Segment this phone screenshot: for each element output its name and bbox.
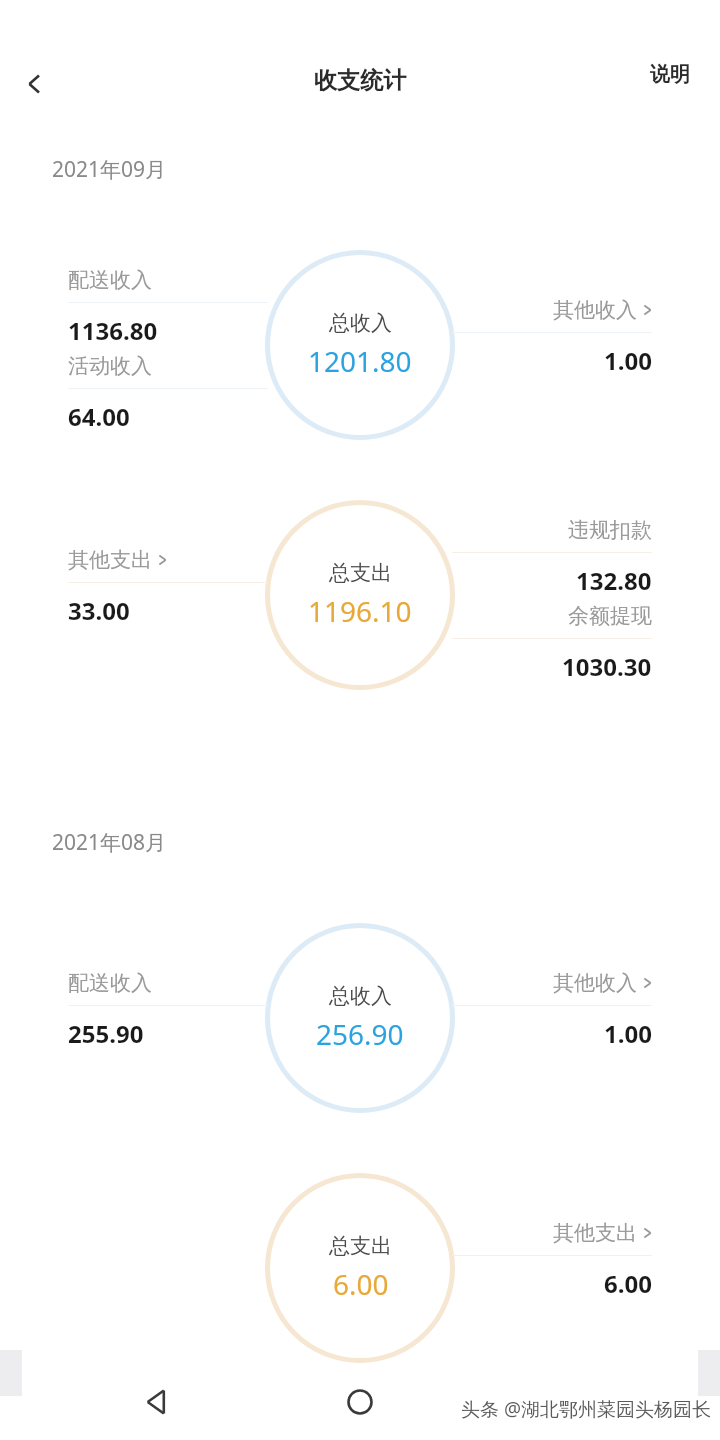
- button[interactable]: 说明: [650, 62, 690, 87]
- staticText: 1201.80: [308, 342, 412, 380]
- staticText: 256.90: [316, 1015, 404, 1053]
- button[interactable]: Home: [332, 1374, 388, 1430]
- staticText: 活动收入: [68, 353, 152, 379]
- staticText: 6.00: [604, 1267, 652, 1300]
- button[interactable]: 违规扣款: [452, 517, 652, 597]
- button[interactable]: 其他支出: [452, 1220, 652, 1300]
- button[interactable]: 总支出: [265, 1173, 455, 1363]
- staticText: 1196.10: [308, 592, 412, 630]
- button[interactable]: 配送收入: [68, 970, 268, 1050]
- staticText: 头条 @湖北鄂州菜园头杨园长: [461, 1396, 712, 1422]
- button[interactable]: Back: [128, 1374, 184, 1430]
- staticText: 其他支出: [68, 547, 152, 573]
- staticText: 其他收入: [553, 970, 637, 996]
- button[interactable]: 余额提现: [452, 603, 652, 683]
- staticText: 33.00: [68, 594, 130, 627]
- staticText: 总支出: [329, 560, 392, 586]
- staticText: 2021年09月: [52, 155, 167, 184]
- staticText: 6.00: [333, 1265, 389, 1303]
- staticText: 64.00: [68, 400, 130, 433]
- button[interactable]: 配送收入: [68, 267, 268, 347]
- staticText: 1.00: [604, 1017, 652, 1050]
- staticText: 配送收入: [68, 267, 152, 293]
- staticText: 其他收入: [553, 297, 637, 323]
- staticText: 1.00: [604, 344, 652, 377]
- staticText: 132.80: [576, 564, 652, 597]
- staticText: 总支出: [329, 1233, 392, 1259]
- staticText: 收支统计: [0, 66, 720, 95]
- button[interactable]: 其他收入: [452, 297, 652, 377]
- button[interactable]: 总收入: [265, 923, 455, 1113]
- staticText: 2021年08月: [52, 828, 167, 857]
- staticText: 1136.80: [68, 314, 158, 347]
- staticText: 255.90: [68, 1017, 144, 1050]
- button[interactable]: 活动收入: [68, 353, 268, 433]
- staticText: 总收入: [329, 983, 392, 1009]
- staticText: 余额提现: [568, 603, 652, 629]
- button[interactable]: Back: [8, 52, 64, 116]
- staticText: 1030.30: [562, 650, 652, 683]
- staticText: 违规扣款: [568, 517, 652, 543]
- staticText: 说明: [650, 62, 690, 87]
- staticText: 其他支出: [553, 1220, 637, 1246]
- staticText: 配送收入: [68, 970, 152, 996]
- button[interactable]: 其他支出: [68, 547, 268, 627]
- button[interactable]: 总收入: [265, 250, 455, 440]
- button[interactable]: 其他收入: [452, 970, 652, 1050]
- button[interactable]: 总支出: [265, 500, 455, 690]
- staticText: 总收入: [329, 310, 392, 336]
